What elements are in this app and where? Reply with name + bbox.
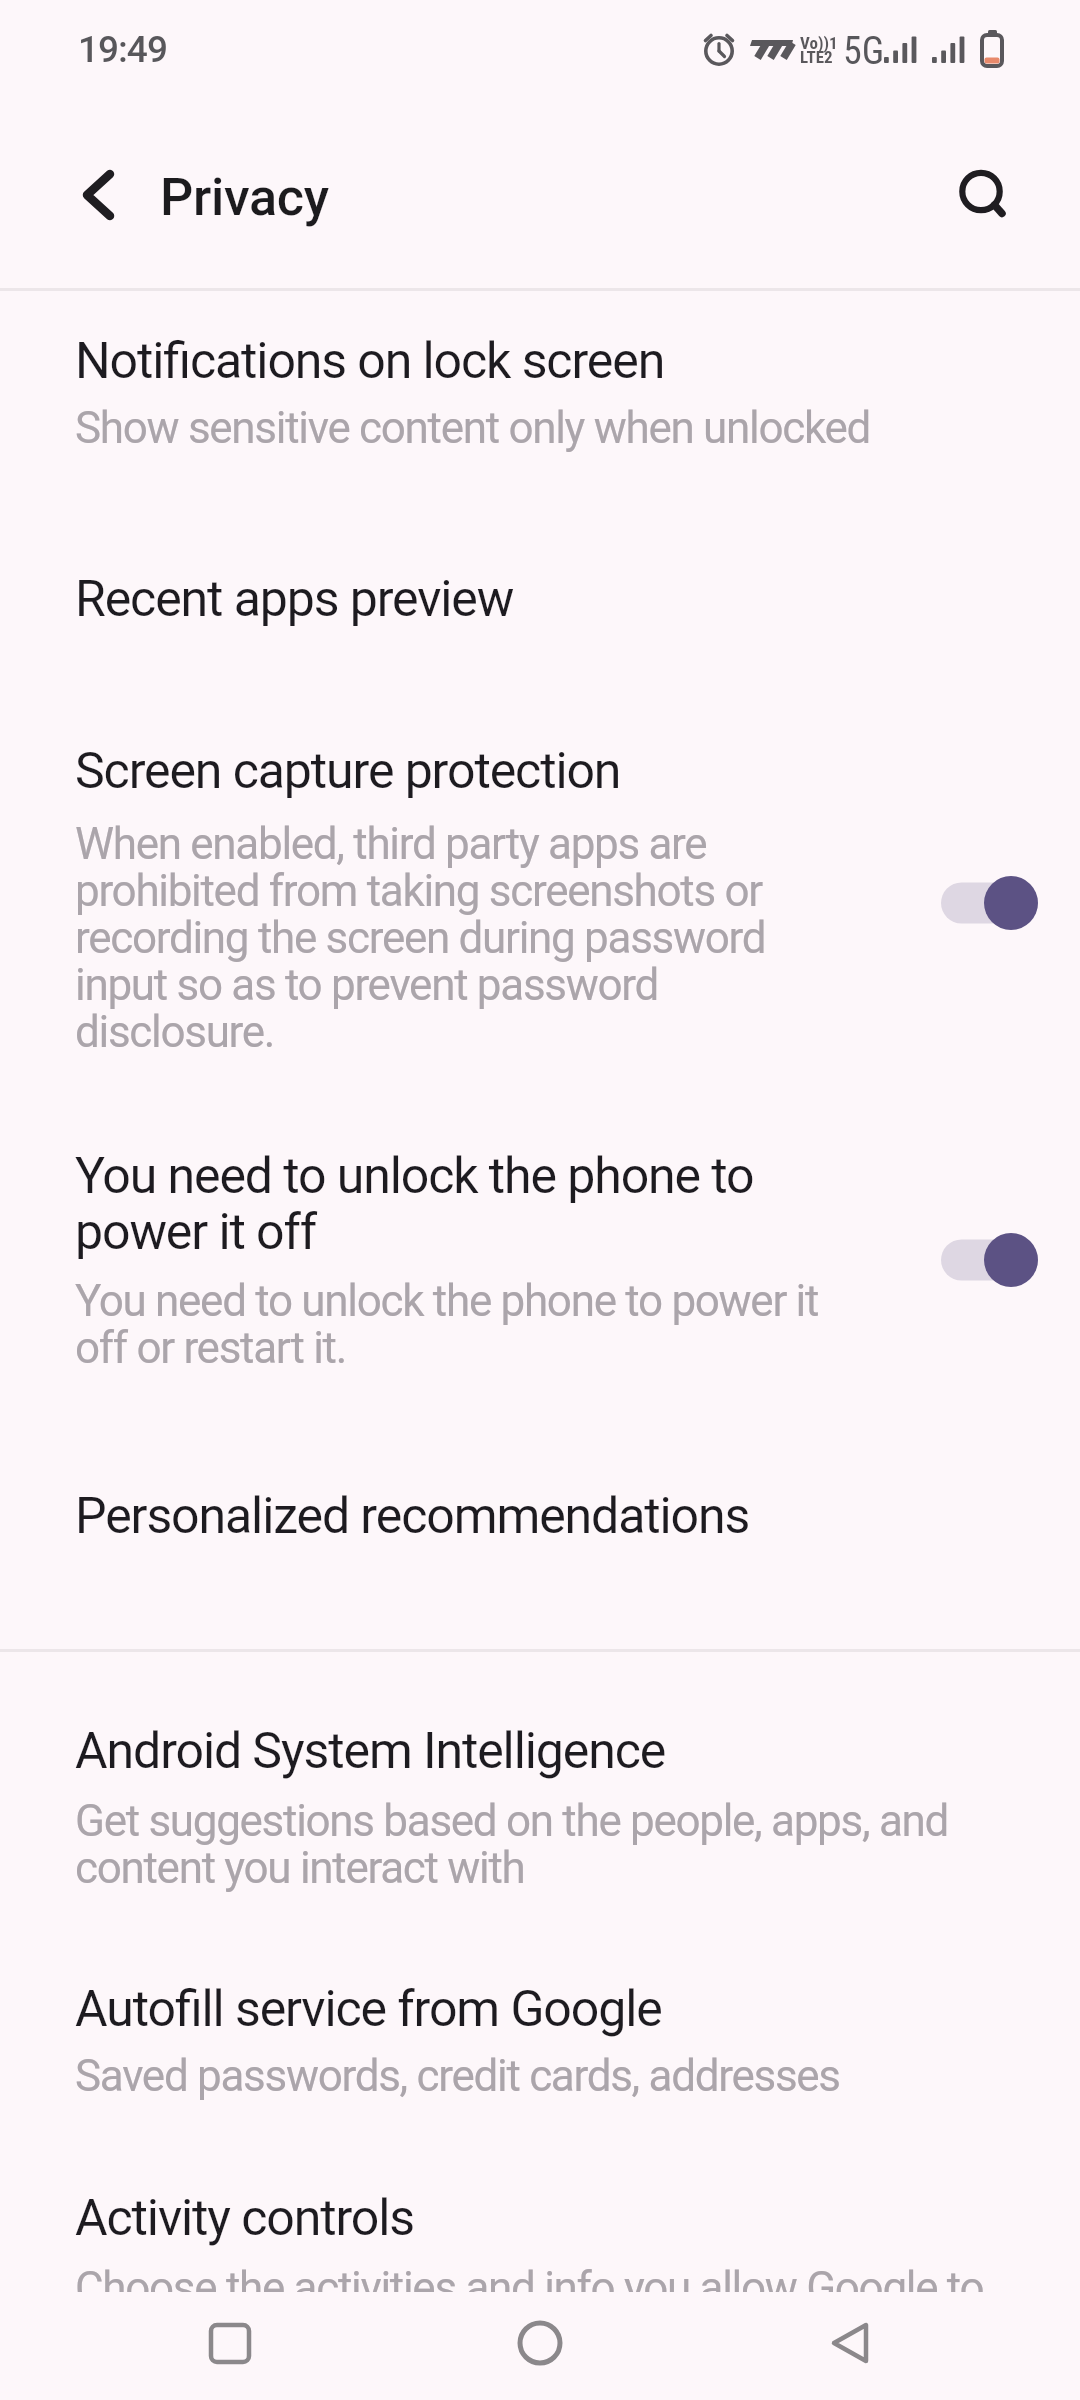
staticText: Privacy: [160, 167, 329, 228]
staticText: Choose the activities and info you allow…: [75, 2262, 984, 2314]
button[interactable]: You need to unlock the phone to power it…: [0, 1130, 1080, 1390]
staticText: 19:49: [78, 28, 167, 71]
button[interactable]: Recent apps preview: [0, 553, 1080, 683]
staticText: Activity controls: [75, 2189, 414, 2248]
button[interactable]: Notifications on lock screen: [0, 315, 1080, 530]
staticText: Recent apps preview: [75, 570, 514, 629]
staticText: Notifications on lock screen: [75, 332, 665, 391]
staticText: Autofill service from Google: [75, 1980, 662, 2039]
staticText: 5G: [843, 29, 885, 74]
button[interactable]: Screen capture protection: [0, 725, 1080, 1075]
button[interactable]: [800, 2292, 900, 2392]
button[interactable]: [935, 1228, 1045, 1292]
button[interactable]: [55, 155, 145, 245]
staticText: When enabled, third party apps are prohi…: [75, 818, 766, 1058]
button[interactable]: [490, 2292, 590, 2392]
button[interactable]: Personalized recommendations: [0, 1470, 1080, 1590]
button[interactable]: [180, 2292, 280, 2392]
staticText: Show sensitive content only when unlocke…: [75, 402, 871, 454]
button[interactable]: [935, 145, 1030, 240]
staticText: Vo))1: [800, 33, 838, 53]
staticText: LTE2: [800, 47, 833, 67]
staticText: Screen capture protection: [75, 742, 621, 801]
staticText: Saved passwords, credit cards, addresses: [75, 2050, 840, 2102]
staticText: Get suggestions based on the people, app…: [75, 1795, 949, 1894]
button[interactable]: [935, 871, 1045, 935]
staticText: You need to unlock the phone to power it…: [75, 1275, 819, 1374]
button[interactable]: Autofill service from Google: [0, 1963, 1080, 2133]
button[interactable]: Activity controls: [0, 2172, 1080, 2292]
staticText: Personalized recommendations: [75, 1487, 750, 1546]
staticText: Android System Intelligence: [75, 1722, 666, 1781]
button[interactable]: Android System Intelligence: [0, 1705, 1080, 1905]
staticText: You need to unlock the phone to power it…: [75, 1147, 754, 1261]
